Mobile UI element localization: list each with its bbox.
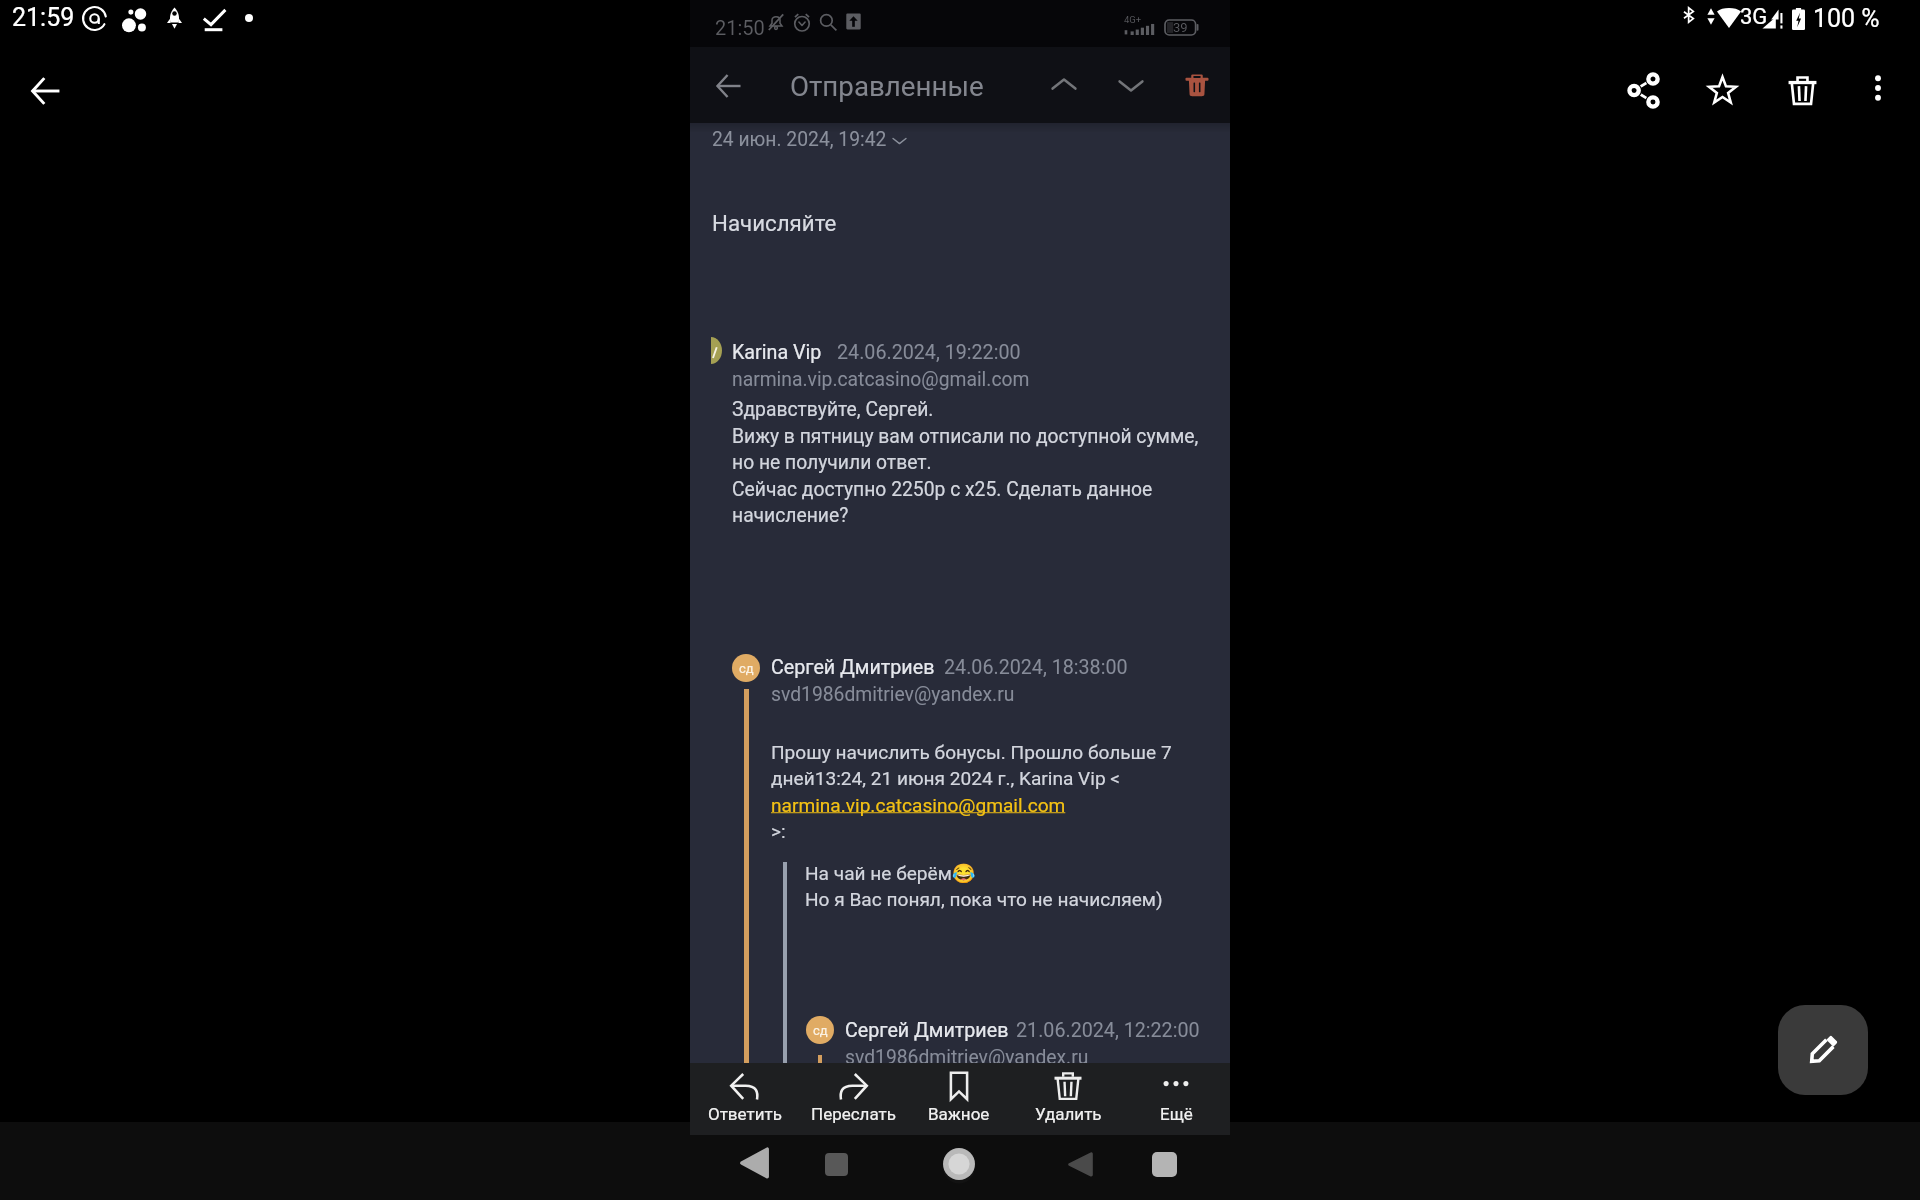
- button[interactable]: Recents: [1132, 1132, 1196, 1196]
- staticText: svd1986dmitriev@yandex.ru: [771, 683, 1015, 706]
- button[interactable]: Delete: [1770, 58, 1834, 122]
- button[interactable]: Favorite: [1690, 58, 1754, 122]
- staticText: сд: [739, 661, 754, 676]
- staticText: Отправленные: [790, 70, 984, 102]
- staticText: На чай не берём😂: [805, 862, 976, 884]
- staticText: 21.06.2024, 12:22:00: [1016, 1019, 1200, 1042]
- staticText: Ещё: [1160, 1104, 1193, 1124]
- staticText: 24.06.2024, 18:38:00: [944, 656, 1128, 679]
- button[interactable]: Back: [14, 59, 78, 123]
- button[interactable]: Удалить: [1016, 1063, 1120, 1135]
- staticText: 21:59: [12, 3, 75, 32]
- button[interactable]: Next message: [1101, 55, 1161, 115]
- button[interactable]: Важное: [907, 1063, 1011, 1135]
- staticText: Важное: [928, 1104, 990, 1124]
- button[interactable]: Share: [1612, 58, 1676, 122]
- staticText: 24.06.2024, 19:22:00: [837, 341, 1021, 364]
- staticText: svd1986dmitriev@yandex.ru: [845, 1046, 1089, 1069]
- button[interactable]: Ещё: [1124, 1063, 1228, 1135]
- staticText: Но я Вас понял, пока что не начисляем): [805, 888, 1163, 910]
- staticText: Прошу начислить бонусы. Прошло больше 7: [771, 741, 1172, 763]
- button[interactable]: Delete: [1167, 55, 1227, 115]
- staticText: narmina.vip.catcasino@gmail.com: [771, 794, 1066, 816]
- button[interactable]: 24 июн. 2024, 19:42: [708, 124, 916, 154]
- staticText: Ответить: [708, 1104, 782, 1124]
- staticText: >:: [771, 820, 786, 842]
- button[interactable]: Recents: [804, 1132, 868, 1196]
- staticText: Удалить: [1035, 1104, 1102, 1124]
- staticText: 3G: [1740, 4, 1768, 30]
- button[interactable]: Back: [1048, 1132, 1112, 1196]
- staticText: 39: [1173, 20, 1188, 35]
- button[interactable]: Back: [699, 56, 759, 116]
- button[interactable]: Home: [927, 1132, 991, 1196]
- staticText: но не получили ответ.: [732, 451, 932, 474]
- staticText: Переслать: [811, 1104, 896, 1124]
- button[interactable]: Переслать: [801, 1063, 905, 1135]
- button[interactable]: Previous message: [1034, 55, 1094, 115]
- staticText: дней13:24, 21 июня 2024 г., Karina Vip <: [771, 767, 1121, 789]
- staticText: Сейчас доступно 2250р с х25. Сделать дан…: [732, 478, 1153, 501]
- button[interactable]: More options: [1848, 58, 1908, 118]
- staticText: Здравствуйте, Сергей.: [732, 398, 934, 421]
- staticText: narmina.vip.catcasino@gmail.com: [732, 368, 1030, 391]
- staticText: Сергей Дмитриев: [845, 1019, 1009, 1042]
- staticText: 4G+: [1124, 14, 1142, 25]
- staticText: Вижу в пятницу вам отписали по доступной…: [732, 425, 1199, 448]
- staticText: Сергей Дмитриев: [771, 656, 935, 679]
- staticText: начисление?: [732, 504, 849, 527]
- button[interactable]: Compose: [1778, 1005, 1868, 1095]
- staticText: 100 %: [1813, 4, 1880, 33]
- staticText: сд: [813, 1023, 828, 1038]
- staticText: 24 июн. 2024, 19:42: [712, 128, 887, 151]
- staticText: Karina Vip: [732, 341, 822, 364]
- staticText: 21:50: [715, 16, 765, 39]
- staticText: Начисляйте: [712, 210, 837, 236]
- button[interactable]: Back: [722, 1131, 786, 1195]
- button[interactable]: Ответить: [693, 1063, 797, 1135]
